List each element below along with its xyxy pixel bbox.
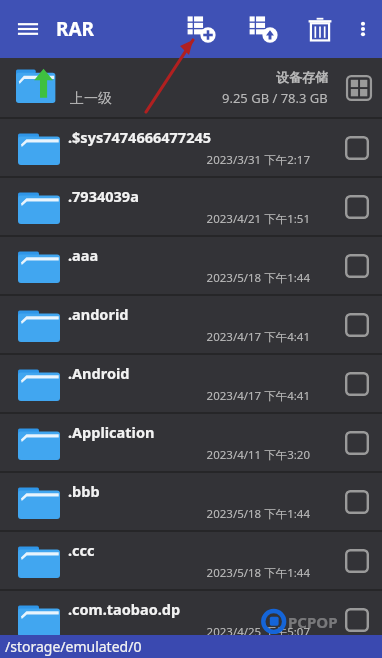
button[interactable]: Select .aaa [332, 237, 382, 294]
button[interactable]: .ccc [0, 532, 382, 589]
staticText: .com.taobao.dp [68, 599, 181, 619]
staticText: 2023/4/21 下午1:51 [68, 211, 310, 227]
button[interactable]: Select .com.taobao.dp [332, 591, 382, 648]
staticText: 上一级 [70, 90, 112, 108]
button[interactable]: Select .$sys7474666477245 [332, 119, 382, 176]
staticText: .andorid [68, 304, 129, 324]
staticText: 设备存储 [276, 69, 328, 85]
button[interactable]: More options [346, 0, 380, 58]
button[interactable]: .Application [0, 414, 382, 471]
button[interactable]: Menu [0, 0, 56, 58]
button[interactable]: .aaa [0, 237, 382, 294]
staticText: 2023/5/18 下午1:44 [68, 270, 310, 286]
staticText: /storage/emulated/0 [5, 637, 142, 656]
staticText: 2023/4/17 下午4:41 [68, 329, 310, 345]
button[interactable]: .com.taobao.dp [0, 591, 382, 648]
button[interactable]: Select .Application [332, 414, 382, 471]
staticText: .7934039a [68, 186, 139, 206]
button[interactable]: .bbb [0, 473, 382, 530]
staticText: 2023/4/11 下午3:20 [68, 447, 310, 463]
button[interactable]: Select .7934039a [332, 178, 382, 235]
button[interactable]: Select .bbb [332, 473, 382, 530]
button[interactable]: .Android [0, 355, 382, 412]
button[interactable]: Select .Android [332, 355, 382, 412]
button[interactable]: Delete [300, 0, 340, 58]
staticText: RAR [56, 16, 95, 42]
staticText: 2023/4/17 下午4:41 [68, 388, 310, 404]
staticText: 2023/5/18 下午1:44 [68, 506, 310, 522]
staticText: .Application [68, 422, 155, 442]
staticText: .$sys7474666477245 [68, 127, 212, 147]
staticText: .aaa [68, 245, 99, 265]
button[interactable]: Add to archive [180, 0, 224, 58]
staticText: PCPOP [288, 612, 338, 632]
staticText: 2023/3/31 下午2:17 [68, 152, 310, 168]
staticText: 9.25 GB / 78.3 GB [222, 89, 328, 107]
button[interactable]: .$sys7474666477245 [0, 119, 382, 176]
staticText: .bbb [68, 481, 100, 501]
button[interactable]: .andorid [0, 296, 382, 353]
button[interactable]: Select .ccc [332, 532, 382, 589]
staticText: 2023/4/25 下午5:07 [68, 624, 310, 640]
staticText: .ccc [68, 540, 95, 560]
staticText: .Android [68, 363, 130, 383]
button[interactable]: .7934039a [0, 178, 382, 235]
button[interactable]: Switch view [336, 58, 382, 117]
staticText: 2023/5/18 下午1:44 [68, 565, 310, 581]
button[interactable]: Extract archive [242, 0, 286, 58]
button[interactable]: 上一级 [0, 58, 382, 117]
button[interactable]: Select .andorid [332, 296, 382, 353]
